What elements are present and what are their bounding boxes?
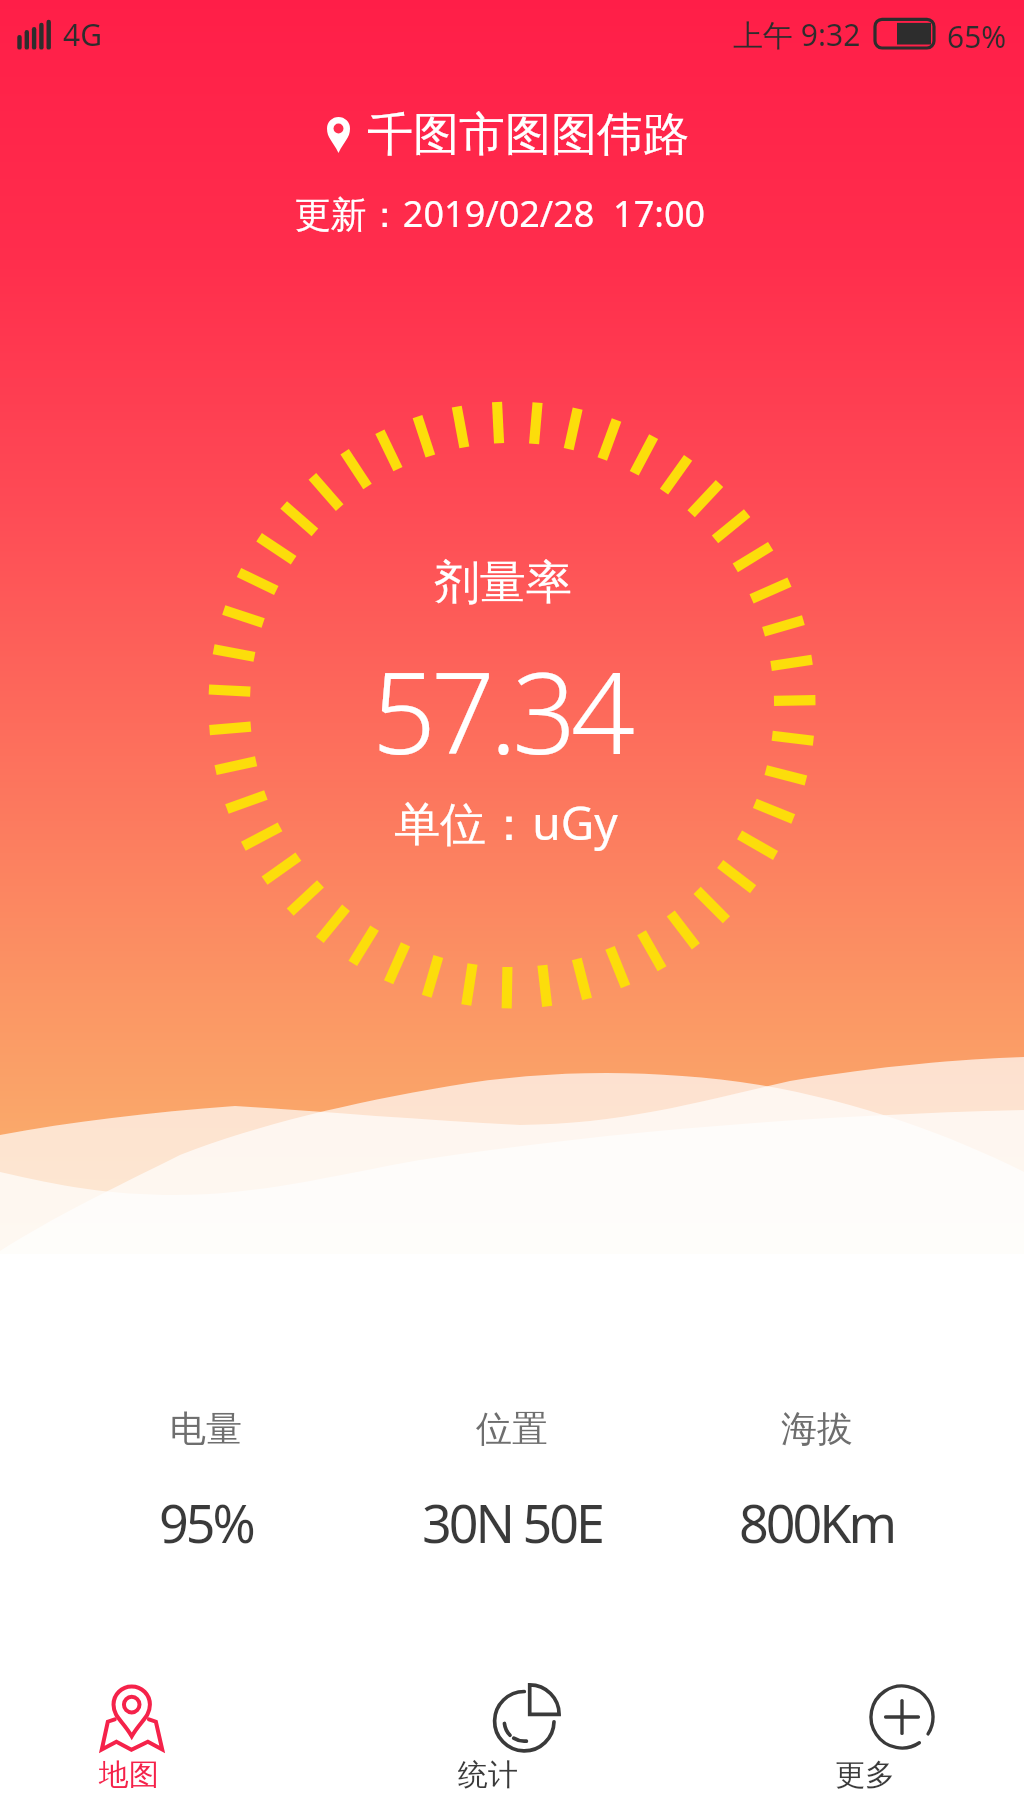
staticText: 统计 — [398, 1756, 578, 1794]
staticText: 更多 — [775, 1756, 955, 1794]
staticText: 更新：2019/02/28 17:00 — [0, 189, 1012, 238]
button[interactable]: More — [775, 1660, 955, 1810]
button[interactable]: 电量 — [66, 1406, 346, 1558]
staticText: 65% — [947, 16, 1007, 57]
staticText: 95% — [159, 1487, 253, 1558]
other: Map — [97, 1681, 177, 1761]
button[interactable]: 位置 — [372, 1406, 652, 1558]
staticText: 剂量率 — [0, 554, 1015, 612]
staticText: 4G — [63, 14, 102, 55]
staticText: 地图 — [39, 1756, 219, 1794]
staticText: 30N 50E — [422, 1487, 602, 1558]
staticText: 57.34 — [0, 634, 1013, 787]
staticText: 800Km — [739, 1487, 895, 1558]
staticText: 海拔 — [781, 1406, 853, 1451]
staticText: 上午 9:32 — [733, 14, 861, 55]
staticText: 位置 — [476, 1406, 548, 1451]
other: Statistics — [495, 1683, 575, 1763]
staticText: 单位：uGy — [0, 791, 1018, 854]
staticText: 电量 — [170, 1406, 242, 1451]
other: More — [862, 1677, 942, 1757]
staticText: 千图市图图伟路 — [367, 106, 689, 164]
button[interactable]: 海拔 — [677, 1406, 957, 1558]
button[interactable]: Map — [39, 1660, 219, 1810]
button[interactable]: Statistics — [398, 1660, 578, 1810]
